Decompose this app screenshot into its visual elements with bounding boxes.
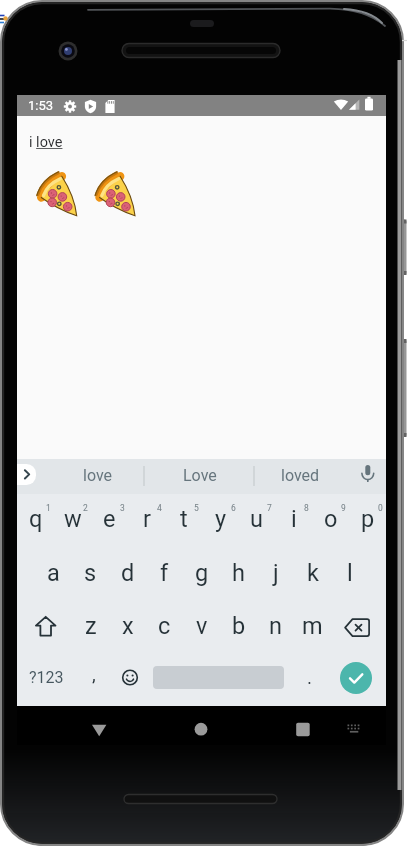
button[interactable] xyxy=(349,461,381,492)
staticText: f xyxy=(160,559,169,587)
staticText: i love xyxy=(29,134,63,151)
staticText: r xyxy=(143,505,151,533)
staticText: s xyxy=(84,559,97,587)
button[interactable] xyxy=(111,653,151,706)
staticText: b xyxy=(232,612,246,640)
staticText: a xyxy=(47,559,60,587)
button[interactable]: k xyxy=(294,547,331,600)
staticText: 1 xyxy=(46,503,51,513)
button[interactable]: b xyxy=(220,600,257,653)
button[interactable]: e xyxy=(91,494,128,547)
staticText: 6 xyxy=(231,503,236,513)
button[interactable]: c xyxy=(146,600,183,653)
staticText: z xyxy=(85,612,97,640)
button[interactable]: h xyxy=(220,547,257,600)
button[interactable]: w xyxy=(54,494,91,547)
button[interactable]: loved xyxy=(255,459,345,494)
staticText: o xyxy=(324,505,338,533)
button[interactable]: x xyxy=(109,600,146,653)
button[interactable]: n xyxy=(257,600,294,653)
staticText: 0 xyxy=(378,503,383,513)
button[interactable]: s xyxy=(72,547,109,600)
staticText: k xyxy=(307,559,319,587)
button[interactable]: f xyxy=(146,547,183,600)
staticText: c xyxy=(158,612,171,640)
button[interactable]: i xyxy=(275,494,312,547)
button[interactable] xyxy=(281,706,325,745)
staticText: h xyxy=(232,559,245,587)
button[interactable]: Love xyxy=(155,459,245,494)
staticText: u xyxy=(250,505,263,533)
button[interactable]: d xyxy=(109,547,146,600)
staticText: 2 xyxy=(83,503,88,513)
button[interactable]: l xyxy=(331,547,368,600)
button[interactable]: p xyxy=(349,494,386,547)
staticText: p xyxy=(361,505,375,533)
button[interactable]: q xyxy=(17,494,54,547)
button[interactable]: love xyxy=(53,459,143,494)
staticText: 4 xyxy=(157,503,162,513)
staticText: w xyxy=(64,505,82,533)
button[interactable] xyxy=(17,600,72,653)
staticText: v xyxy=(196,612,208,640)
button[interactable]: y xyxy=(202,494,239,547)
button[interactable] xyxy=(331,600,386,653)
staticText: . xyxy=(307,666,313,688)
button[interactable]: o xyxy=(312,494,349,547)
staticText: y xyxy=(215,505,227,533)
staticText: n xyxy=(269,612,282,640)
button[interactable] xyxy=(179,706,223,745)
staticText: l xyxy=(347,559,353,587)
staticText: q xyxy=(29,505,43,533)
staticText: t xyxy=(180,505,188,533)
staticText: love xyxy=(83,466,113,485)
staticText: x xyxy=(122,612,134,640)
button[interactable]: r xyxy=(128,494,165,547)
staticText: d xyxy=(121,559,135,587)
button[interactable]: j xyxy=(257,547,294,600)
button[interactable]: m xyxy=(294,600,331,653)
button[interactable] xyxy=(17,464,36,485)
button[interactable]: ?123 xyxy=(17,653,75,706)
button[interactable]: t xyxy=(165,494,202,547)
staticText: Love xyxy=(183,466,217,485)
button[interactable] xyxy=(77,706,121,745)
button[interactable]: z xyxy=(72,600,109,653)
staticText: j xyxy=(273,559,279,587)
staticText: g xyxy=(195,559,209,587)
staticText: 1:53 xyxy=(28,98,54,113)
staticText: 7 xyxy=(267,503,272,513)
staticText: ?123 xyxy=(29,668,64,687)
staticText: i xyxy=(291,505,297,533)
button[interactable] xyxy=(339,708,369,742)
button[interactable]: u xyxy=(238,494,275,547)
staticText: 9 xyxy=(341,503,346,513)
button[interactable]: g xyxy=(183,547,220,600)
button[interactable]: v xyxy=(183,600,220,653)
button[interactable]: i love xyxy=(17,116,386,459)
staticText: loved xyxy=(281,466,320,485)
staticText: e xyxy=(103,505,116,533)
staticText: 5 xyxy=(194,503,199,513)
staticText: , xyxy=(92,663,96,685)
button[interactable] xyxy=(340,662,372,694)
staticText: 8 xyxy=(304,503,309,513)
staticText: m xyxy=(302,612,323,640)
button[interactable]: . xyxy=(292,653,328,706)
staticText: 3 xyxy=(120,503,125,513)
button[interactable]: a xyxy=(35,547,72,600)
button[interactable]: , xyxy=(75,653,113,706)
